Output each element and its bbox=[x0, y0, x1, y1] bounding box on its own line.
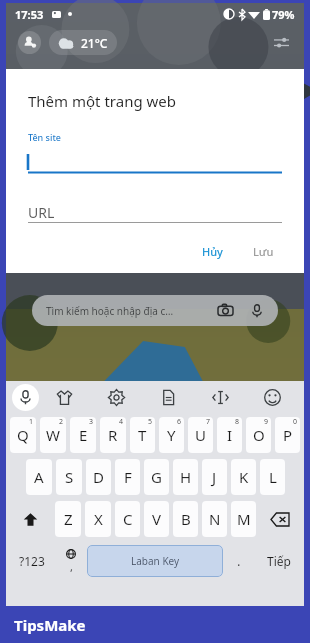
staticText: Laban Key bbox=[131, 554, 180, 568]
button[interactable]: Text editing bbox=[194, 381, 246, 414]
staticText: K bbox=[239, 467, 249, 487]
button[interactable]: Voice input bbox=[12, 384, 39, 411]
staticText: 2 bbox=[59, 417, 64, 427]
staticText: Thêm một trang web bbox=[28, 91, 177, 111]
staticText: 21°C bbox=[81, 35, 108, 51]
staticText: 7 bbox=[206, 417, 211, 427]
staticText: X bbox=[94, 509, 103, 529]
button[interactable]: E bbox=[70, 417, 96, 453]
staticText: 4 bbox=[119, 417, 124, 427]
button[interactable]: Z bbox=[55, 501, 81, 537]
staticText: E bbox=[79, 425, 88, 445]
button[interactable]: S bbox=[56, 459, 82, 495]
button[interactable]: A bbox=[26, 459, 52, 495]
staticText: 6 bbox=[177, 417, 182, 427]
button[interactable]: C bbox=[115, 501, 140, 537]
staticText: R bbox=[108, 425, 118, 445]
button[interactable]: Change language bbox=[55, 540, 87, 582]
button[interactable]: M bbox=[231, 501, 256, 537]
button[interactable]: Emoji bbox=[246, 381, 298, 414]
staticText: TipsMake bbox=[14, 615, 86, 635]
staticText: S bbox=[65, 467, 74, 487]
staticText: . bbox=[237, 552, 241, 570]
staticText: N bbox=[209, 509, 221, 529]
button[interactable]: H bbox=[173, 459, 198, 495]
staticText: 8 bbox=[235, 417, 240, 427]
staticText: A bbox=[34, 467, 44, 487]
staticText: 5 bbox=[148, 417, 153, 427]
button[interactable]: Q bbox=[10, 417, 36, 453]
staticText: 3 bbox=[89, 417, 94, 427]
staticText: C bbox=[123, 509, 133, 529]
staticText: 79% bbox=[272, 7, 295, 22]
staticText: H bbox=[180, 467, 192, 487]
button[interactable]: F bbox=[115, 459, 140, 495]
staticText: 17:53 bbox=[15, 7, 44, 22]
staticText: Hủy bbox=[202, 244, 223, 259]
staticText: D bbox=[93, 467, 104, 487]
staticText: 9 bbox=[264, 417, 269, 427]
button[interactable]: Settings bbox=[270, 31, 292, 53]
button[interactable]: T bbox=[130, 417, 155, 453]
staticText: 1 bbox=[29, 417, 34, 427]
button[interactable]: J bbox=[202, 459, 227, 495]
button[interactable]: I bbox=[217, 417, 242, 453]
staticText: J bbox=[212, 467, 217, 487]
button[interactable]: Lưu bbox=[245, 240, 282, 263]
button[interactable]: P bbox=[275, 417, 300, 453]
staticText: Tìm kiếm hoặc nhập địa c… bbox=[46, 304, 174, 318]
staticText: T bbox=[138, 425, 147, 445]
button[interactable]: L bbox=[260, 459, 285, 495]
staticText: I bbox=[227, 425, 233, 445]
staticText: Y bbox=[167, 425, 176, 445]
button[interactable]: Camera search bbox=[217, 302, 234, 319]
button[interactable]: 21°C bbox=[58, 30, 108, 55]
staticText: , bbox=[70, 559, 73, 574]
button[interactable]: U bbox=[188, 417, 213, 453]
staticText: O bbox=[253, 425, 265, 445]
button[interactable]: Backspace bbox=[260, 500, 300, 538]
button[interactable]: X bbox=[85, 501, 111, 537]
staticText: U bbox=[195, 425, 206, 445]
staticText: F bbox=[124, 467, 132, 487]
button[interactable]: R bbox=[100, 417, 126, 453]
button[interactable]: Profile bbox=[18, 31, 41, 54]
button[interactable]: . bbox=[223, 540, 255, 582]
button[interactable]: Shift bbox=[10, 500, 51, 538]
staticText: ?123 bbox=[19, 553, 45, 569]
button[interactable]: Tìm kiếm hoặc nhập địa c… bbox=[46, 295, 265, 326]
button[interactable]: N bbox=[202, 501, 227, 537]
staticText: Tiếp bbox=[267, 553, 291, 569]
button[interactable]: Laban Key bbox=[87, 545, 223, 577]
staticText: 0 bbox=[293, 417, 298, 427]
staticText: V bbox=[152, 509, 162, 529]
staticText: L bbox=[269, 467, 277, 487]
button[interactable]: K bbox=[231, 459, 256, 495]
button[interactable]: O bbox=[246, 417, 271, 453]
button[interactable]: Stickers bbox=[39, 381, 90, 414]
staticText: Q bbox=[17, 425, 29, 445]
staticText: URL bbox=[28, 203, 55, 222]
button[interactable]: V bbox=[144, 501, 169, 537]
button[interactable]: Voice search bbox=[248, 302, 265, 319]
staticText: W bbox=[46, 425, 60, 445]
button[interactable]: Hủy bbox=[194, 240, 231, 263]
button[interactable]: W bbox=[40, 417, 66, 453]
button[interactable]: Clipboard bbox=[142, 381, 194, 414]
button[interactable]: ?123 bbox=[8, 540, 55, 582]
staticText: Lưu bbox=[253, 244, 274, 259]
button[interactable]: D bbox=[86, 459, 111, 495]
button[interactable]: Tiếp bbox=[255, 540, 302, 582]
button[interactable]: B bbox=[173, 501, 198, 537]
staticText: B bbox=[181, 509, 191, 529]
staticText: Z bbox=[64, 509, 73, 529]
button[interactable]: URL bbox=[28, 202, 282, 222]
staticText: Tên site bbox=[28, 131, 61, 143]
staticText: M bbox=[237, 509, 251, 529]
button[interactable]: Settings bbox=[90, 381, 142, 414]
button[interactable]: G bbox=[144, 459, 169, 495]
staticText: G bbox=[151, 467, 162, 487]
button[interactable]: Y bbox=[159, 417, 184, 453]
staticText: P bbox=[283, 425, 293, 445]
